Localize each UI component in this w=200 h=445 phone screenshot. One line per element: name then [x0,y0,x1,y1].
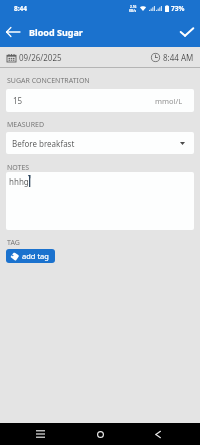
staticText: NOTES [7,163,30,173]
button[interactable]: 09/26/2025 [0,48,151,67]
staticText: 2.16 [130,5,137,9]
staticText: KB/s [129,9,137,13]
staticText: 8:44 AM [163,52,194,63]
button[interactable]: 8:44 AM [151,48,200,67]
button[interactable]: Before breakfast [6,132,194,154]
staticText: SUGAR CONCENTRATION [7,76,90,86]
staticText: Blood Sugar [29,26,83,38]
staticText: 8:44 [14,4,27,13]
staticText: hhhg [9,176,29,187]
staticText: 09/26/2025 [19,52,62,63]
staticText: add tag [22,251,49,261]
staticText: TAG [7,238,20,248]
button[interactable]: Save [174,16,200,47]
button[interactable]: hhhg [6,172,194,230]
staticText: mmol/L [155,96,183,106]
button[interactable]: 15 [6,89,194,112]
button[interactable]: Back [140,423,180,445]
button[interactable]: Recent apps [20,423,60,445]
staticText: 73% [171,4,185,13]
button[interactable]: Home [80,423,120,445]
staticText: MEASURED [7,120,45,130]
staticText: Before breakfast [12,138,75,149]
staticText: 15 [13,95,23,106]
button[interactable]: Navigate up [1,16,24,47]
button[interactable]: add tag [6,249,55,263]
